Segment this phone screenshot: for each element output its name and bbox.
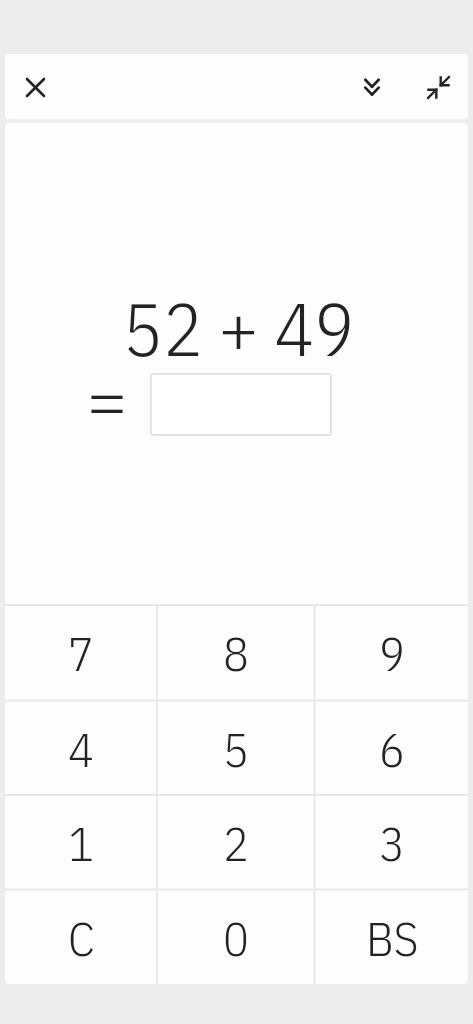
staticText: 0 <box>223 907 249 969</box>
staticText: 7 <box>68 622 94 684</box>
staticText: 4 <box>68 718 94 780</box>
staticText: 5 <box>223 718 249 780</box>
button[interactable]: 8 <box>157 605 315 701</box>
button[interactable]: C <box>5 890 157 985</box>
button[interactable]: 4 <box>5 701 157 796</box>
button[interactable]: 0 <box>157 890 315 985</box>
staticText: = <box>87 351 127 431</box>
button[interactable]: 9 <box>315 605 469 701</box>
button[interactable] <box>348 63 396 111</box>
staticText: BS <box>366 907 419 969</box>
staticText: 52 + 49 <box>123 280 355 371</box>
staticText: 8 <box>223 622 249 684</box>
staticText: 6 <box>379 718 405 780</box>
button[interactable] <box>150 373 332 436</box>
staticText: 3 <box>379 812 405 874</box>
staticText: 1 <box>68 812 94 874</box>
button[interactable]: 2 <box>157 795 315 890</box>
button[interactable]: 6 <box>315 701 469 796</box>
button[interactable]: BS <box>315 890 469 985</box>
staticText: 2 <box>223 812 249 874</box>
button[interactable] <box>414 63 462 111</box>
button[interactable]: 1 <box>5 795 157 890</box>
staticText: C <box>68 907 95 969</box>
button[interactable]: 3 <box>315 795 469 890</box>
staticText: 9 <box>379 622 405 684</box>
button[interactable]: 7 <box>5 605 157 701</box>
button[interactable]: 5 <box>157 701 315 796</box>
button[interactable] <box>11 63 59 111</box>
